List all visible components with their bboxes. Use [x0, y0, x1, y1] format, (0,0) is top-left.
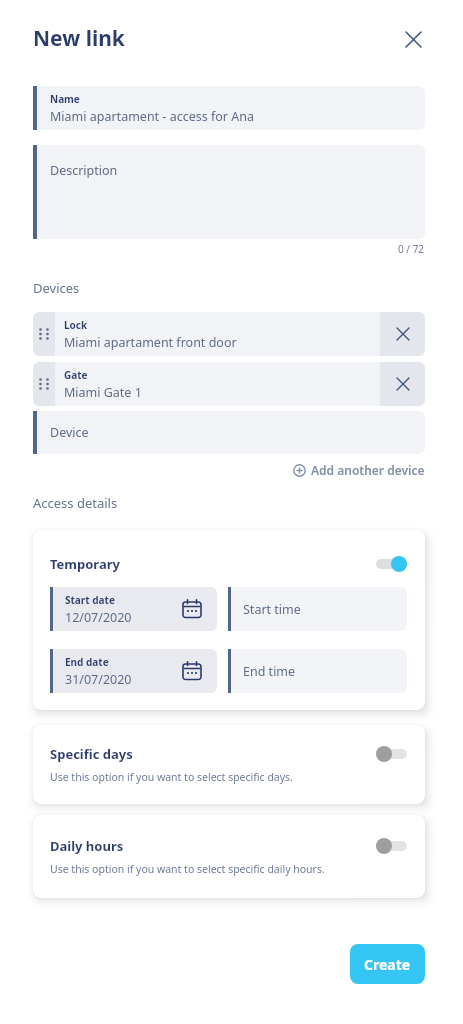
button[interactable]: Start time — [228, 587, 407, 631]
staticText: Use this option if you want to select sp… — [50, 862, 325, 876]
staticText: Miami apartament - access for Ana — [50, 108, 254, 125]
staticText: Specific days — [50, 745, 133, 763]
button[interactable] — [401, 27, 425, 51]
button[interactable]: End date — [50, 649, 217, 693]
button[interactable] — [380, 312, 425, 356]
staticText: Name — [50, 92, 80, 106]
staticText: Miami apartament front door — [64, 334, 237, 351]
staticText: Add another device — [311, 462, 425, 478]
staticText: Start time — [243, 601, 301, 618]
staticText: 12/07/2020 — [65, 609, 132, 626]
staticText: 31/07/2020 — [65, 671, 132, 688]
button[interactable]: Description — [33, 145, 425, 239]
staticText: Daily hours — [50, 837, 124, 855]
staticText: Description — [50, 162, 118, 179]
staticText: Start date — [65, 593, 115, 607]
staticText: End time — [243, 663, 296, 680]
staticText: Access details — [33, 494, 118, 512]
staticText: Device — [50, 424, 89, 441]
button[interactable]: End time — [228, 649, 407, 693]
button[interactable] — [376, 838, 407, 854]
staticText: Miami Gate 1 — [64, 384, 142, 401]
button[interactable]: Name — [33, 86, 425, 130]
staticText: Use this option if you want to select sp… — [50, 770, 293, 784]
staticText: 0 / 72 — [398, 242, 425, 256]
staticText: Create — [364, 955, 411, 974]
button[interactable]: Start date — [50, 587, 217, 631]
button[interactable]: Create — [350, 944, 425, 984]
button[interactable] — [376, 746, 407, 762]
staticText: New link — [33, 24, 125, 53]
button[interactable] — [380, 362, 425, 406]
button[interactable] — [376, 556, 407, 572]
staticText: Lock — [64, 318, 88, 332]
button[interactable]: Device — [33, 411, 425, 454]
staticText: Gate — [64, 368, 88, 382]
staticText: Temporary — [50, 555, 120, 573]
staticText: Devices — [33, 279, 80, 297]
button[interactable]: Add another device — [293, 462, 425, 478]
staticText: End date — [65, 655, 109, 669]
